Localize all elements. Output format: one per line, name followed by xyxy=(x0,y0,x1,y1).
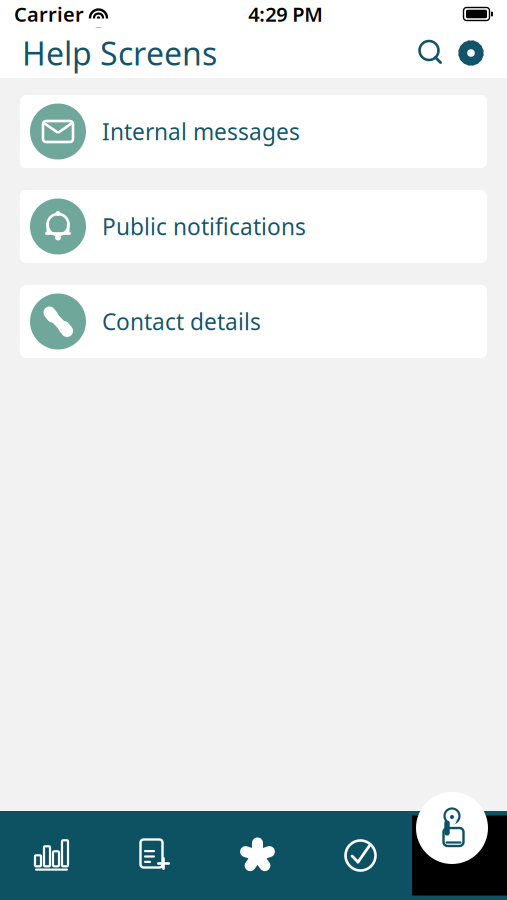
button[interactable]: Public notifications xyxy=(20,190,487,263)
staticText: Public notifications xyxy=(102,211,306,241)
staticText: Carrier xyxy=(14,1,84,27)
button[interactable]: Tap action xyxy=(409,785,495,871)
button[interactable]: Contact details xyxy=(20,285,487,358)
button[interactable]: New document xyxy=(103,815,206,895)
staticText: Contact details xyxy=(102,306,261,336)
staticText: Internal messages xyxy=(102,116,300,146)
staticText: Help Screens xyxy=(22,32,217,74)
button[interactable]: Search xyxy=(411,31,451,75)
button[interactable]: Settings xyxy=(451,31,491,75)
button[interactable]: Internal messages xyxy=(20,95,487,168)
button[interactable]: Tasks xyxy=(309,815,412,895)
button[interactable]: Statistics xyxy=(0,815,103,895)
button[interactable]: Favorites xyxy=(206,815,309,895)
staticText: 4:29 PM xyxy=(248,1,323,27)
